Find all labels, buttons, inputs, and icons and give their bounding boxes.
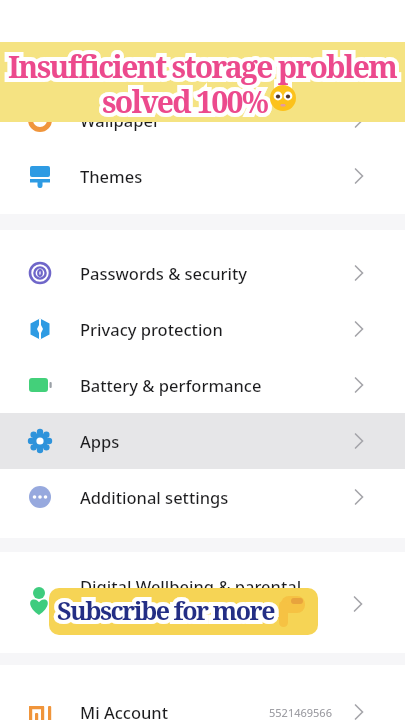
staticText: Mi Account <box>80 701 168 720</box>
button[interactable]: Insufficient storage problem <box>0 42 405 122</box>
staticText: 5521469566 <box>269 705 332 720</box>
staticText: Battery & performance <box>80 374 262 396</box>
button[interactable]: Additional settings <box>0 469 405 525</box>
staticText: Digital Wellbeing & parental <box>80 575 302 597</box>
button[interactable]: Mi Account <box>0 684 405 720</box>
button[interactable]: Wallpaper <box>0 92 405 148</box>
staticText: solved 100% <box>102 81 268 122</box>
staticText: Subscribe for more <box>57 593 274 627</box>
staticText: Passwords & security <box>80 262 247 284</box>
staticText: solved 100% <box>102 81 268 122</box>
staticText: Insufficient storage problem <box>8 46 397 87</box>
button[interactable]: Themes <box>0 148 405 204</box>
button[interactable]: Digital Wellbeing & parental <box>0 558 405 614</box>
staticText: Apps <box>80 430 120 452</box>
button[interactable]: Passwords & security <box>0 245 405 301</box>
staticText: Additional settings <box>80 486 229 508</box>
staticText: Subscribe for more <box>57 593 274 627</box>
staticText: Insufficient storage problem <box>8 46 397 87</box>
button[interactable]: Subscribe for more <box>49 588 318 635</box>
staticText: Themes <box>80 165 143 187</box>
button[interactable]: Privacy protection <box>0 301 405 357</box>
staticText: Wallpaper <box>80 109 160 131</box>
staticText: Privacy protection <box>80 318 223 340</box>
button[interactable]: Battery & performance <box>0 357 405 413</box>
button[interactable]: Apps <box>0 413 405 469</box>
